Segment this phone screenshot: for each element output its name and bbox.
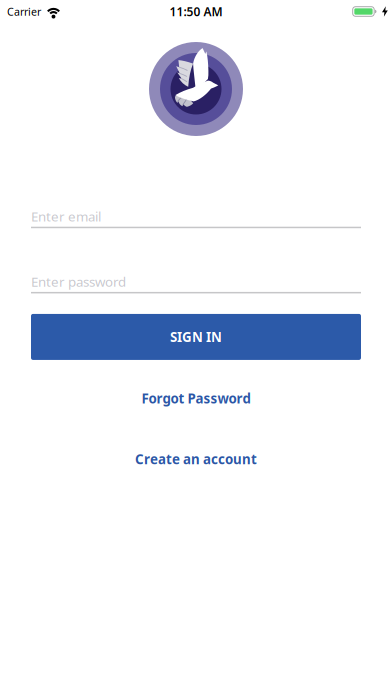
staticText: Create an account [135, 450, 257, 468]
button[interactable]: Enter password [31, 273, 361, 293]
staticText: 11:50 AM [169, 3, 222, 19]
staticText: SIGN IN [170, 328, 222, 346]
button[interactable]: SIGN IN [31, 314, 361, 360]
button[interactable]: Create an account [135, 450, 257, 468]
staticText: Forgot Password [141, 389, 250, 407]
staticText: Enter password [31, 273, 126, 290]
staticText: Enter email [31, 207, 101, 225]
button[interactable]: Enter email [31, 207, 361, 228]
button[interactable]: Forgot Password [141, 389, 250, 407]
staticText: Carrier [7, 4, 41, 19]
